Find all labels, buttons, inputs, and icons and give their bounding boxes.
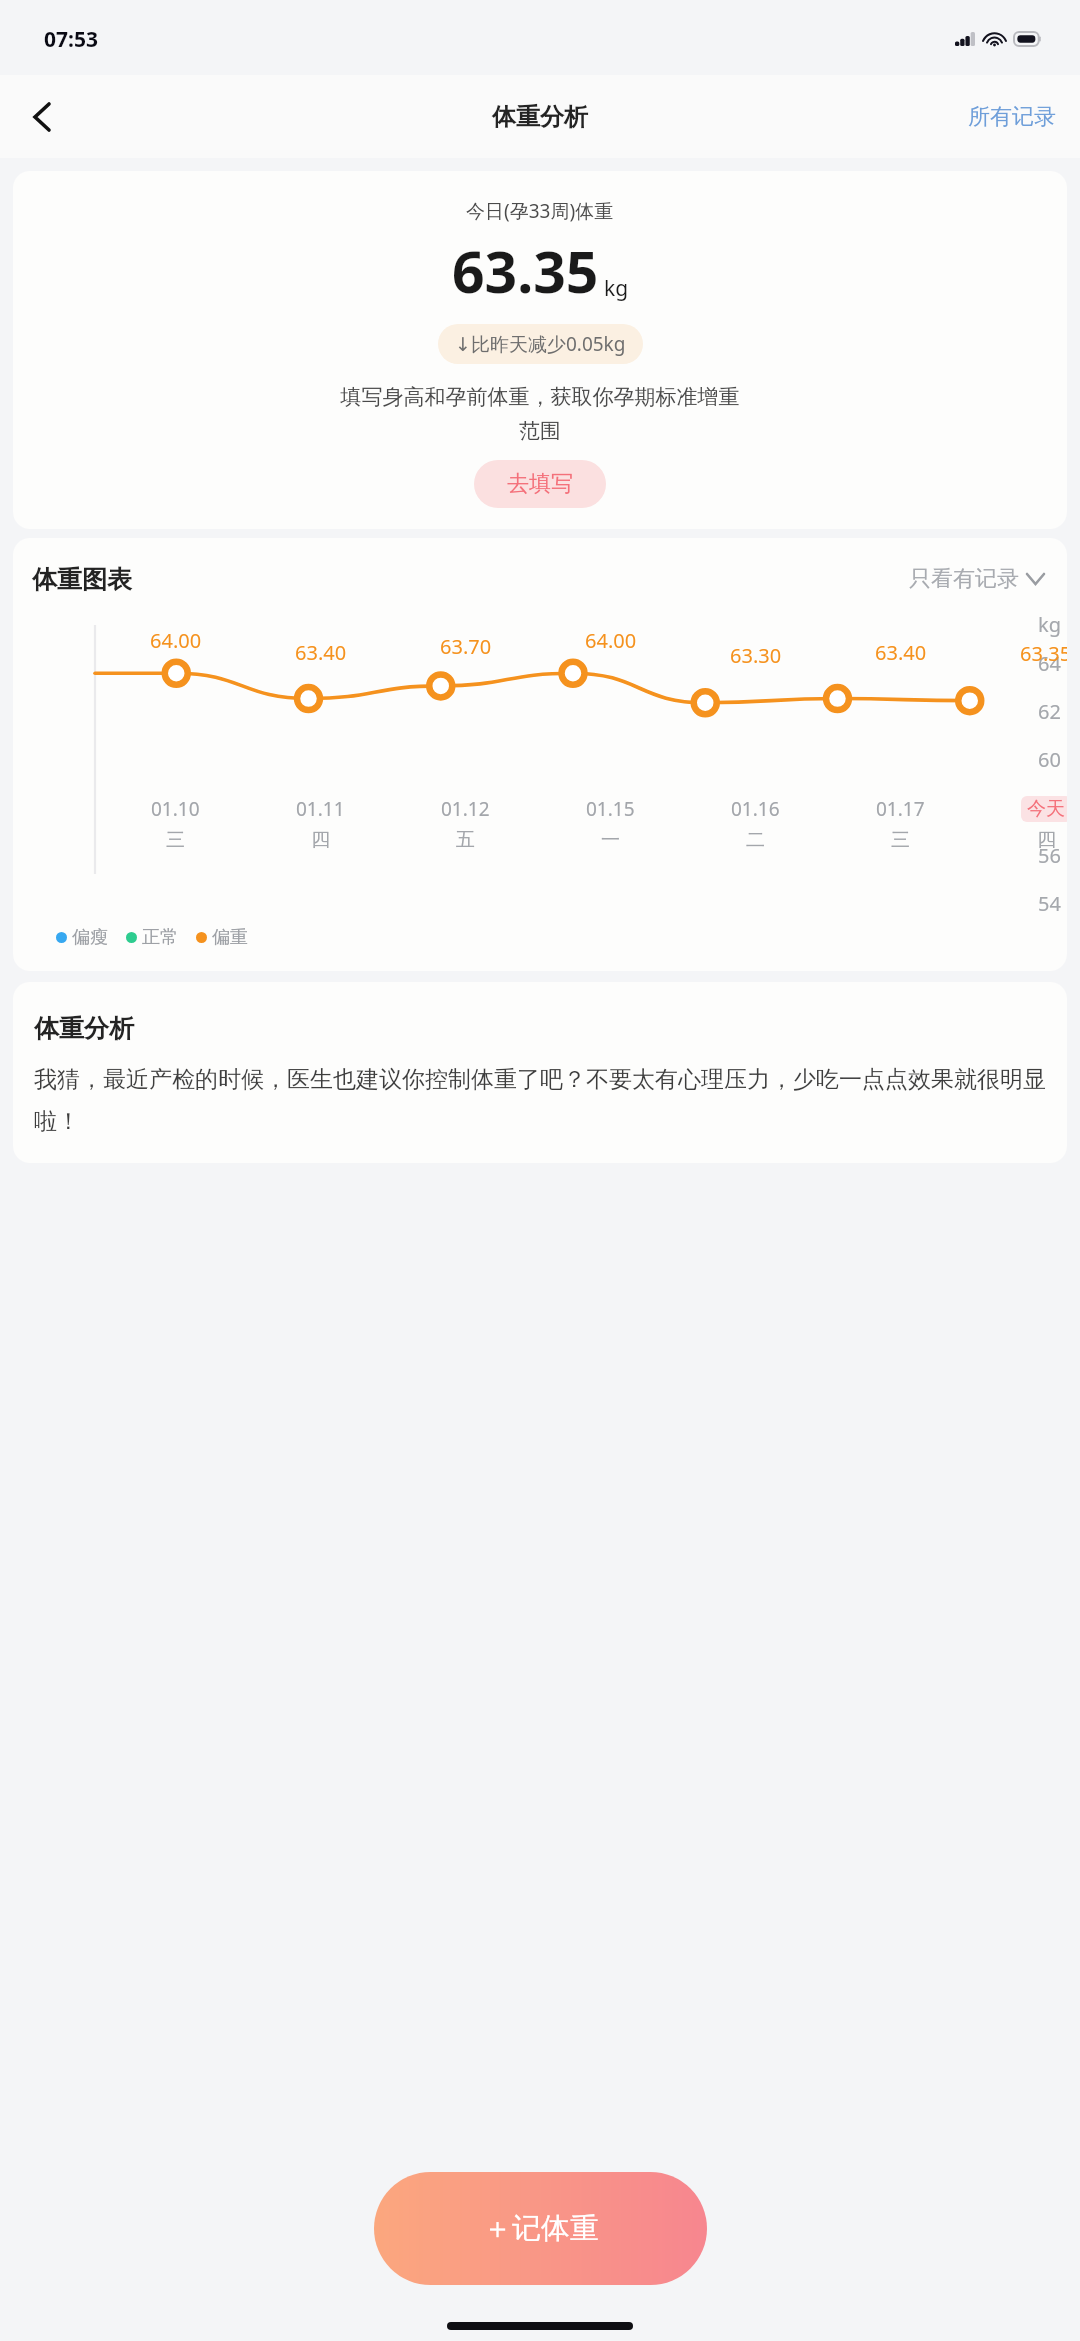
- staticText: 01.11: [296, 796, 345, 822]
- staticText: 64: [1038, 650, 1061, 677]
- staticText: 正常: [142, 926, 178, 949]
- staticText: kg: [1038, 611, 1061, 638]
- staticText: 三: [166, 828, 185, 852]
- staticText: 只看有记录: [909, 565, 1019, 593]
- staticText: 64.00: [150, 627, 202, 654]
- staticText: 63.35: [1020, 640, 1067, 667]
- staticText: 五: [456, 828, 475, 852]
- staticText: 62: [1038, 698, 1061, 725]
- staticText: 一: [601, 828, 620, 852]
- staticText: 二: [746, 828, 765, 852]
- staticText: 63.35: [452, 232, 599, 310]
- button[interactable]: 只看有记录: [905, 559, 1048, 599]
- staticText: 体重分析: [34, 1013, 134, 1044]
- staticText: 56: [1038, 842, 1061, 869]
- staticText: 63.40: [295, 639, 347, 666]
- staticText: 三: [891, 828, 910, 852]
- staticText: 54: [1038, 890, 1061, 916]
- staticText: 填写身高和孕前体重，获取你孕期标准增重 范围: [43, 384, 1037, 444]
- staticText: 今天: [1027, 797, 1065, 821]
- staticText: kg: [604, 274, 629, 303]
- staticText: 四: [311, 828, 330, 852]
- staticText: 今日(孕33周)体重: [466, 198, 614, 224]
- staticText: 01.10: [151, 796, 200, 822]
- staticText: 01.12: [441, 796, 490, 822]
- button[interactable]: 所有记录: [958, 95, 1066, 139]
- staticText: 四: [1037, 828, 1056, 852]
- button[interactable]: 去填写: [474, 460, 606, 508]
- staticText: 60: [1038, 746, 1061, 773]
- staticText: 07:53: [44, 25, 98, 54]
- staticText: 体重分析: [492, 102, 588, 132]
- staticText: 所有记录: [968, 103, 1056, 131]
- staticText: 63.40: [875, 639, 927, 666]
- staticText: 偏瘦: [72, 926, 108, 949]
- staticText: ↓比昨天减少0.05kg: [455, 331, 626, 357]
- staticText: 01.17: [876, 796, 925, 822]
- staticText: 01.16: [731, 796, 780, 822]
- staticText: 58: [1038, 794, 1061, 821]
- staticText: ＋记体重: [483, 2210, 599, 2247]
- staticText: 63.70: [440, 633, 492, 660]
- staticText: 63.30: [730, 642, 782, 669]
- staticText: 偏重: [212, 926, 248, 949]
- staticText: 01.15: [586, 796, 635, 822]
- button[interactable]: ＋记体重: [374, 2172, 707, 2285]
- staticText: 去填写: [507, 470, 573, 498]
- staticText: 体重图表: [32, 564, 132, 595]
- staticText: 我猜，最近产检的时候，医生也建议你控制体重了吧？不要太有心理压力，少吃一点点效果…: [34, 1065, 1046, 1135]
- button[interactable]: Back: [12, 87, 72, 147]
- staticText: 64.00: [585, 627, 637, 654]
